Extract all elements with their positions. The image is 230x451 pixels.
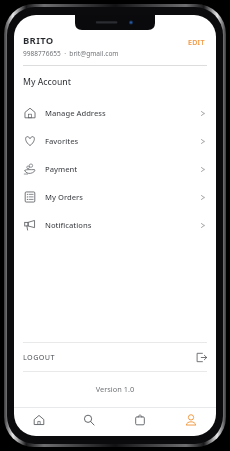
staticText: Manage Address	[45, 108, 199, 118]
staticText: 9988776655 · brit@gmail.com	[23, 49, 119, 58]
staticText: Favorites	[45, 136, 199, 146]
button[interactable]: Search	[64, 408, 114, 432]
staticText: EDIT	[188, 38, 205, 48]
staticText: Notifications	[45, 220, 199, 230]
staticText: Payment	[45, 164, 199, 174]
staticText: Version 1.0	[14, 384, 216, 394]
staticText: BRITO	[23, 34, 54, 47]
button[interactable]: Home	[14, 408, 64, 432]
button[interactable]: LOGOUT	[14, 343, 216, 371]
button[interactable]: Notifications	[14, 211, 216, 239]
button[interactable]: Favorites	[14, 127, 216, 155]
button[interactable]: Cart	[114, 408, 165, 432]
button[interactable]: Profile	[165, 408, 216, 432]
staticText: My Orders	[45, 192, 199, 202]
button[interactable]: Manage Address	[14, 99, 216, 127]
button[interactable]: Payment	[14, 155, 216, 183]
button[interactable]: My Orders	[14, 183, 216, 211]
button[interactable]: EDIT	[185, 34, 208, 52]
staticText: LOGOUT	[23, 352, 196, 362]
staticText: My Account	[23, 76, 72, 88]
